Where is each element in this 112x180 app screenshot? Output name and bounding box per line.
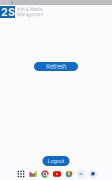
staticText: Logout [47, 158, 64, 164]
button[interactable]: Google Photos [65, 170, 73, 178]
button[interactable]: All apps [17, 170, 24, 177]
button[interactable]: Tab [0, 0, 9, 4]
button[interactable]: New tab [10, 0, 14, 5]
staticText: 2S [1, 5, 15, 18]
button[interactable]: YouTube [53, 171, 61, 177]
button[interactable]: Chrome [41, 170, 49, 178]
button[interactable]: Meet [77, 170, 85, 178]
staticText: Info & Media [17, 7, 42, 12]
button[interactable]: Logout [42, 156, 69, 166]
button[interactable]: Chat [89, 170, 97, 178]
button[interactable]: Gmail [29, 171, 36, 177]
staticText: Management [17, 12, 43, 17]
staticText: Refresh [46, 63, 66, 70]
button[interactable]: Refresh [34, 62, 78, 71]
